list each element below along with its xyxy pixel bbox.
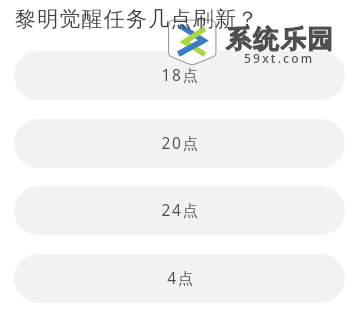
staticText: 20点 [161,132,200,153]
button[interactable]: 24点 [14,186,345,235]
staticText: 系统乐园 [226,23,335,55]
staticText: 18点 [161,64,200,85]
other: Logo [167,17,217,67]
staticText: 4点 [167,267,195,288]
button[interactable]: 20点 [14,119,345,168]
staticText: 59xt.com [244,50,315,66]
staticText: 24点 [161,199,200,220]
staticText: 黎明觉醒任务几点刷新？ [15,6,260,32]
button[interactable]: 18点 [14,51,345,100]
button[interactable]: 4点 [14,254,345,303]
